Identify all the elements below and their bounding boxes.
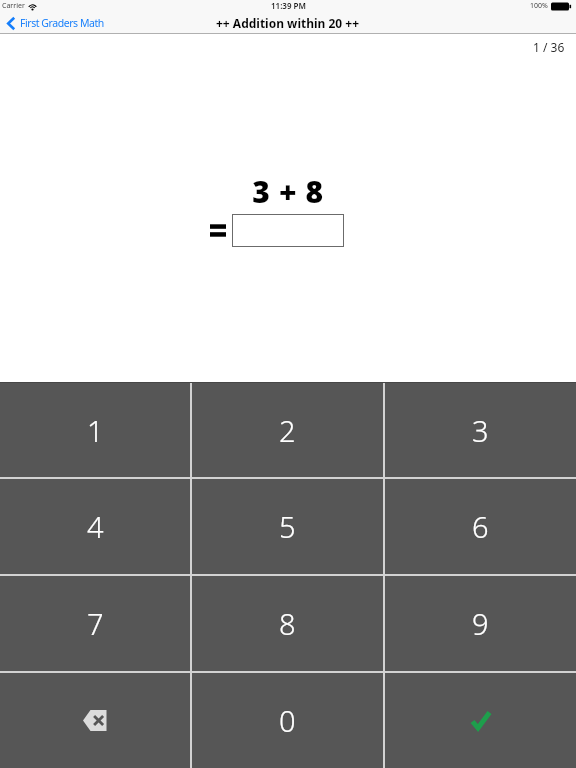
button[interactable]: 6 — [385, 479, 576, 574]
staticText: 9 — [472, 604, 489, 643]
button[interactable]: 1 — [0, 383, 190, 477]
staticText: 1 — [87, 411, 104, 450]
button[interactable]: 4 — [0, 479, 190, 574]
button[interactable]: First Graders Math — [7, 13, 104, 33]
staticText: 3 + 8 — [252, 171, 324, 212]
staticText: 0 — [279, 701, 296, 740]
staticText: ++ Addition within 20 ++ — [216, 15, 360, 31]
staticText: 2 — [279, 411, 296, 450]
button[interactable] — [232, 214, 344, 247]
staticText: 5 — [279, 507, 296, 546]
button[interactable]: 0 — [192, 673, 383, 768]
button[interactable]: 5 — [192, 479, 383, 574]
staticText: 4 — [87, 507, 104, 546]
staticText: 6 — [472, 507, 489, 546]
button[interactable] — [0, 673, 190, 768]
staticText: 100% — [530, 1, 548, 11]
staticText: Carrier — [2, 1, 25, 11]
button[interactable]: 2 — [192, 383, 383, 477]
button[interactable]: 7 — [0, 576, 190, 671]
staticText: 1 / 36 — [533, 39, 565, 55]
staticText: 8 — [279, 604, 296, 643]
button[interactable]: 8 — [192, 576, 383, 671]
staticText: 11:39 PM — [271, 0, 306, 11]
button[interactable] — [385, 673, 576, 768]
staticText: First Graders Math — [20, 16, 104, 30]
button[interactable]: 9 — [385, 576, 576, 671]
staticText: 3 — [472, 411, 489, 450]
staticText: 7 — [87, 604, 104, 643]
button[interactable]: 3 — [385, 383, 576, 477]
